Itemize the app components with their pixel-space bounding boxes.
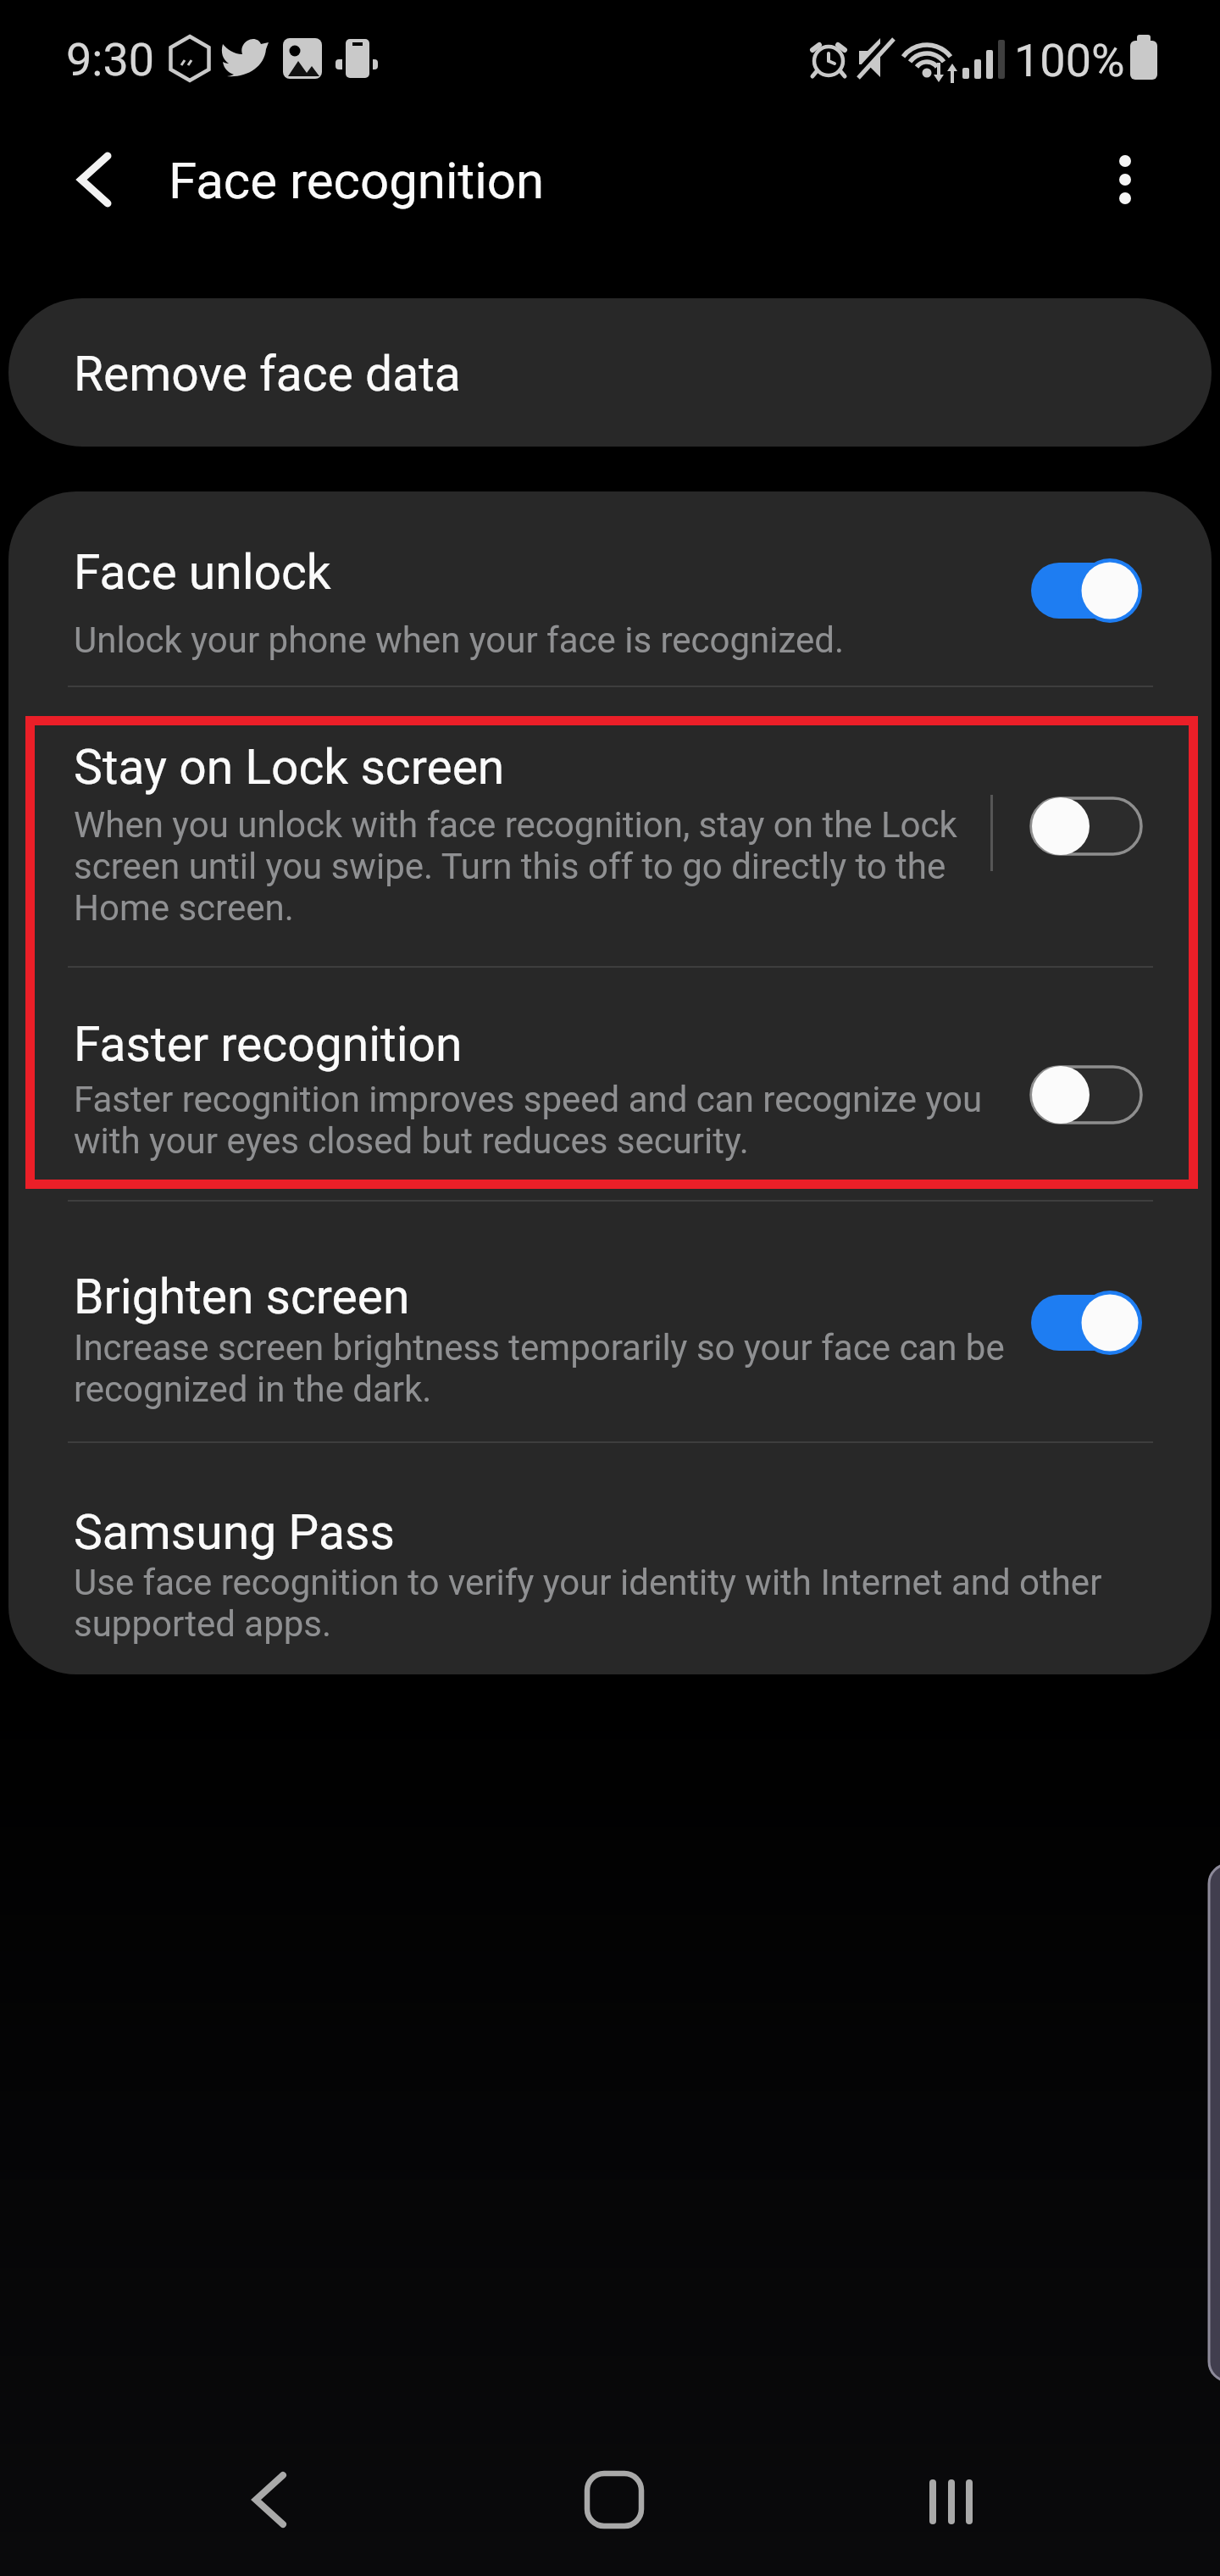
button[interactable]: Remove face data (8, 298, 1212, 447)
button[interactable] (1091, 144, 1159, 215)
staticText: Samsung Pass (74, 1504, 395, 1561)
button[interactable]: Face unlock (8, 491, 1212, 686)
staticText: Increase screen brightness temporarily s… (74, 1327, 1005, 1410)
button[interactable]: Faster recognition (8, 966, 1212, 1200)
staticText: Faster recognition improves speed and ca… (74, 1079, 983, 1162)
staticText: 9:30 (66, 33, 155, 86)
button[interactable] (59, 146, 127, 214)
staticText: Use face recognition to verify your iden… (74, 1562, 1102, 1645)
button[interactable] (900, 2457, 1001, 2542)
button[interactable]: Samsung Pass (8, 1441, 1212, 1674)
staticText: Face recognition (169, 151, 545, 210)
button[interactable] (1031, 558, 1145, 623)
staticText: Stay on Lock screen (74, 739, 505, 796)
button[interactable] (1031, 1291, 1145, 1355)
button[interactable]: Stay on Lock screen (8, 686, 1212, 966)
button[interactable] (1031, 794, 1145, 858)
staticText: Faster recognition (74, 1016, 463, 1073)
button[interactable]: Brighten screen (8, 1200, 1212, 1441)
staticText: Face unlock (74, 544, 331, 601)
staticText: Brighten screen (74, 1269, 410, 1325)
button[interactable] (1031, 1063, 1145, 1127)
button[interactable] (563, 2457, 665, 2542)
staticText: When you unlock with face recognition, s… (74, 804, 957, 929)
staticText: Remove face data (74, 346, 461, 402)
staticText: 100% (1014, 34, 1125, 87)
staticText: Unlock your phone when your face is reco… (74, 619, 845, 661)
button[interactable] (217, 2457, 319, 2542)
